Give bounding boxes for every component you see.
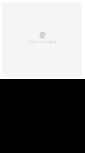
staticText: Plug-in not loaded bbox=[28, 40, 56, 44]
